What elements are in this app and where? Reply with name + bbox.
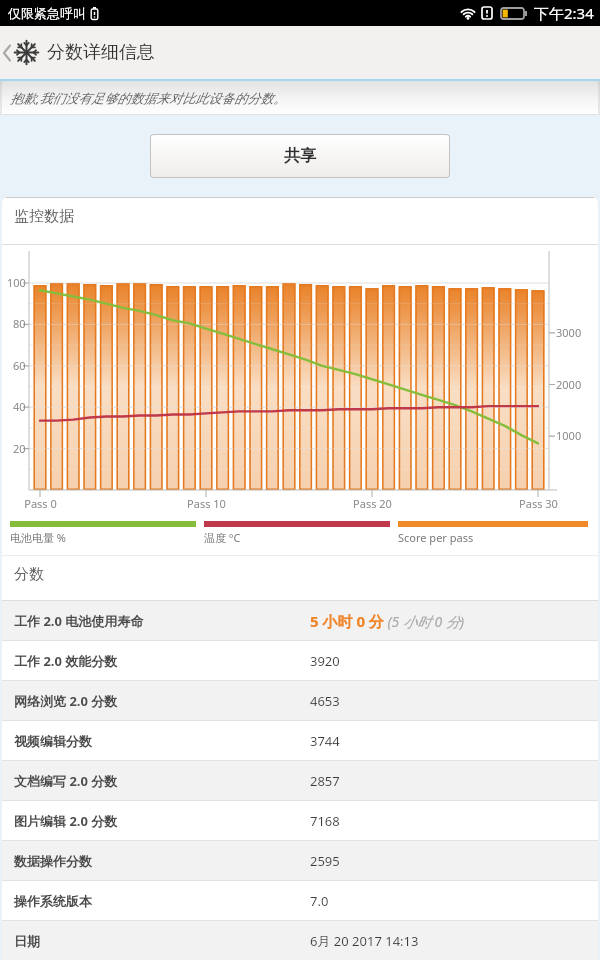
staticText: 共享 xyxy=(284,146,316,166)
button[interactable]: 日期 xyxy=(2,921,598,960)
staticText: 20 xyxy=(13,441,26,456)
button[interactable]: 共享 xyxy=(151,135,449,177)
staticText: 图片编辑 2.0 分数 xyxy=(14,812,118,830)
staticText: 抱歉,我们没有足够的数据来对比此设备的分数。 xyxy=(10,89,287,107)
button[interactable]: 工作 2.0 电池使用寿命 xyxy=(2,601,598,640)
staticText: 1000 xyxy=(556,428,582,443)
staticText: 80 xyxy=(13,316,26,331)
staticText: 电池电量 % xyxy=(10,530,67,545)
button[interactable] xyxy=(0,26,14,79)
staticText: Pass 0 xyxy=(24,496,57,511)
staticText: 3000 xyxy=(556,325,582,340)
staticText: Score per pass xyxy=(398,530,474,545)
staticText: 100 xyxy=(7,275,26,290)
staticText: 视频编辑分数 xyxy=(14,733,92,749)
button[interactable]: 工作 2.0 效能分数 xyxy=(2,641,598,680)
button[interactable]: 视频编辑分数 xyxy=(2,721,598,760)
button[interactable]: 数据操作分数 xyxy=(2,841,598,880)
staticText: 5 小时 0 分 (5 小时 0 分) xyxy=(310,611,464,631)
button[interactable]: 网络浏览 2.0 分数 xyxy=(2,681,598,720)
staticText: 网络浏览 2.0 分数 xyxy=(14,692,118,710)
staticText: 温度 °C xyxy=(204,530,241,545)
staticText: 仅限紧急呼叫 xyxy=(8,5,86,21)
staticText: Pass 30 xyxy=(519,496,558,511)
staticText: 数据操作分数 xyxy=(14,853,92,869)
staticText: 2857 xyxy=(310,772,340,790)
staticText: 3920 xyxy=(310,652,340,670)
staticText: 4653 xyxy=(310,692,340,710)
staticText: 文档编写 2.0 分数 xyxy=(14,772,118,790)
button[interactable]: 文档编写 2.0 分数 xyxy=(2,761,598,800)
staticText: 6月 20 2017 14:13 xyxy=(310,932,419,950)
staticText: 日期 xyxy=(14,933,40,949)
staticText: 2000 xyxy=(556,377,582,392)
staticText: 监控数据 xyxy=(14,207,74,226)
button[interactable]: 操作系统版本 xyxy=(2,881,598,920)
staticText: Pass 20 xyxy=(353,496,392,511)
staticText: 7.0 xyxy=(310,892,329,910)
staticText: Pass 10 xyxy=(187,496,226,511)
staticText: 7168 xyxy=(310,812,340,830)
staticText: 分数 xyxy=(14,565,44,584)
button[interactable]: 图片编辑 2.0 分数 xyxy=(2,801,598,840)
staticText: 3744 xyxy=(310,732,340,750)
staticText: 2595 xyxy=(310,852,340,870)
staticText: 40 xyxy=(13,399,26,414)
staticText: 操作系统版本 xyxy=(14,893,92,909)
staticText: 60 xyxy=(13,358,26,373)
staticText: 分数详细信息 xyxy=(47,41,155,64)
staticText: 下午2:34 xyxy=(534,3,594,23)
staticText: 工作 2.0 电池使用寿命 xyxy=(14,612,144,630)
staticText: 工作 2.0 效能分数 xyxy=(14,652,118,670)
